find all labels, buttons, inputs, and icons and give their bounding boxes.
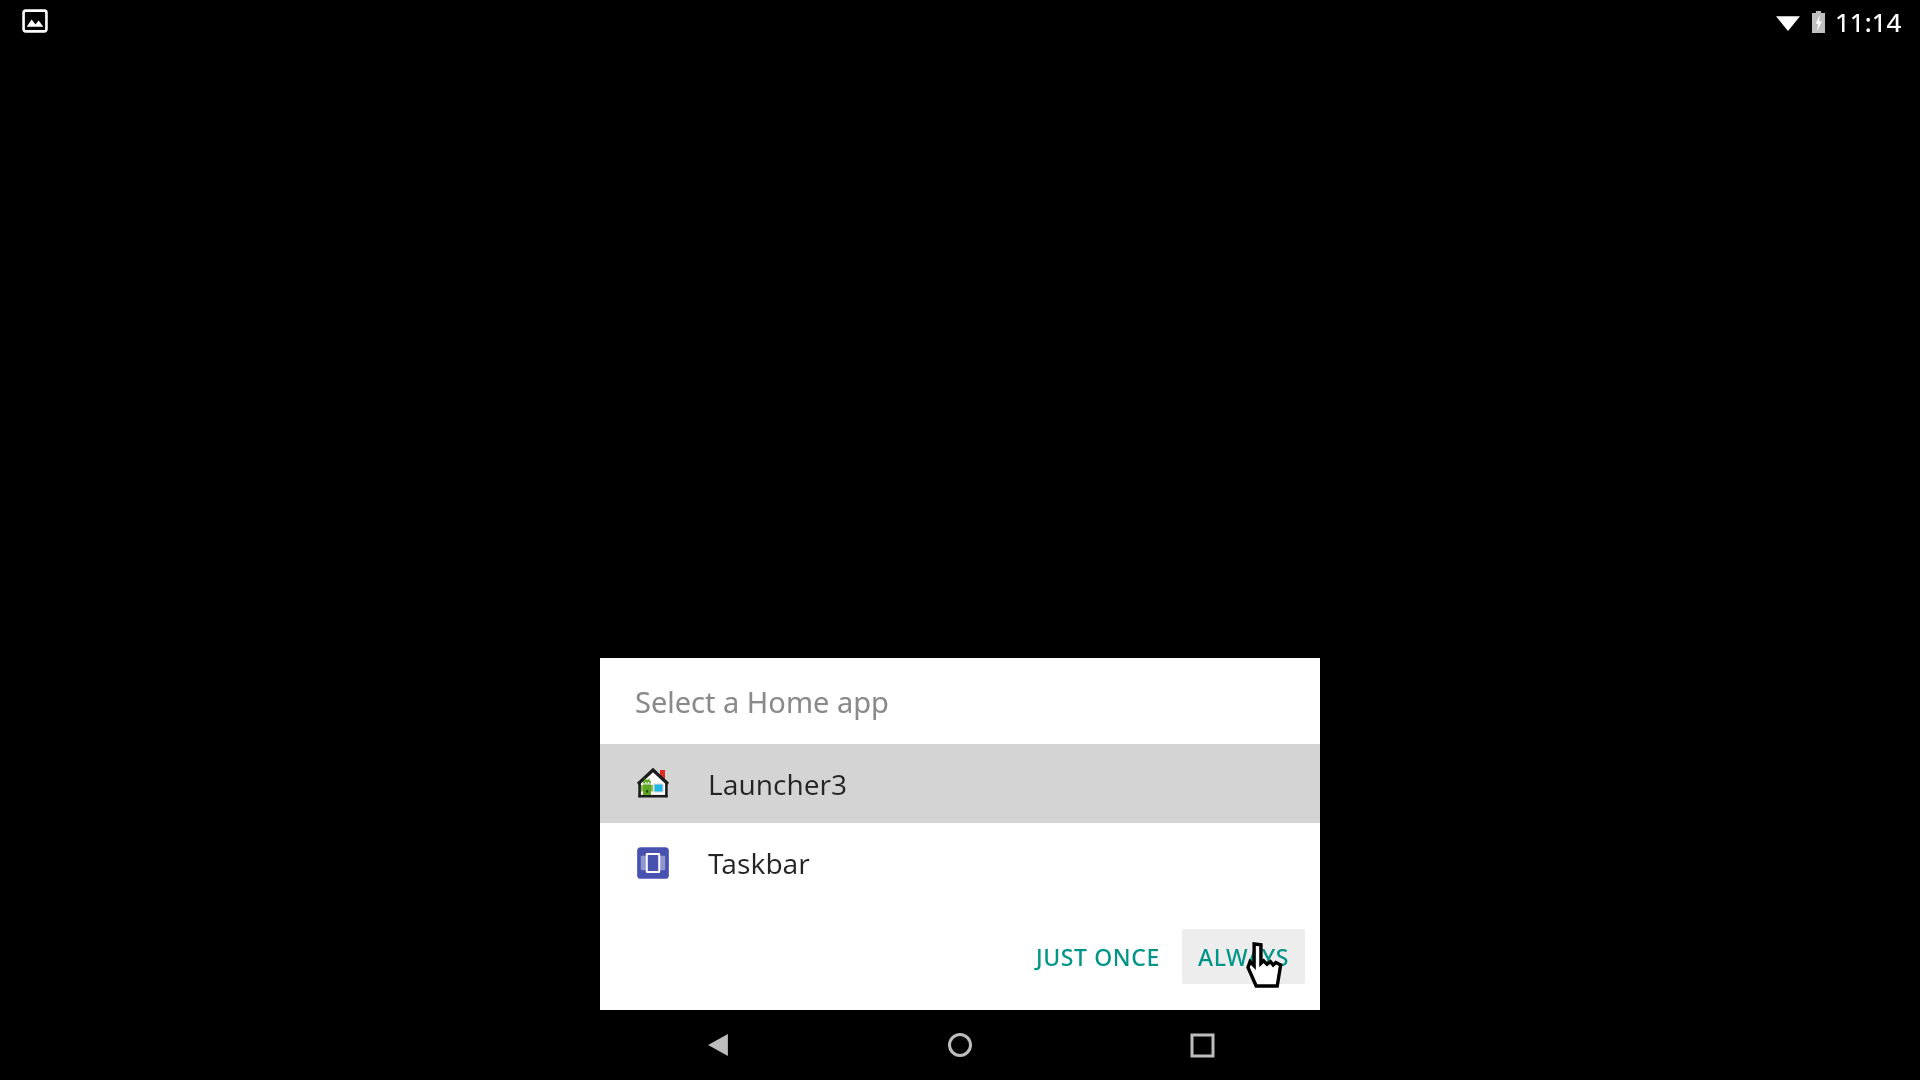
button[interactable]: Home bbox=[932, 1017, 988, 1073]
staticText: JUST ONCE bbox=[1036, 941, 1160, 972]
button[interactable]: Taskbar bbox=[600, 823, 1320, 902]
staticText: 11:14 bbox=[1835, 4, 1902, 39]
staticText: Taskbar bbox=[708, 844, 810, 882]
button[interactable]: Back bbox=[690, 1017, 746, 1073]
staticText: Launcher3 bbox=[708, 765, 848, 803]
staticText: ALWAYS bbox=[1198, 941, 1289, 972]
button[interactable]: ALWAYS bbox=[1182, 929, 1305, 984]
button[interactable]: JUST ONCE bbox=[1020, 929, 1176, 984]
button[interactable]: Recent apps bbox=[1174, 1017, 1230, 1073]
button[interactable]: Launcher3 bbox=[600, 744, 1320, 823]
staticText: Select a Home app bbox=[635, 682, 889, 721]
